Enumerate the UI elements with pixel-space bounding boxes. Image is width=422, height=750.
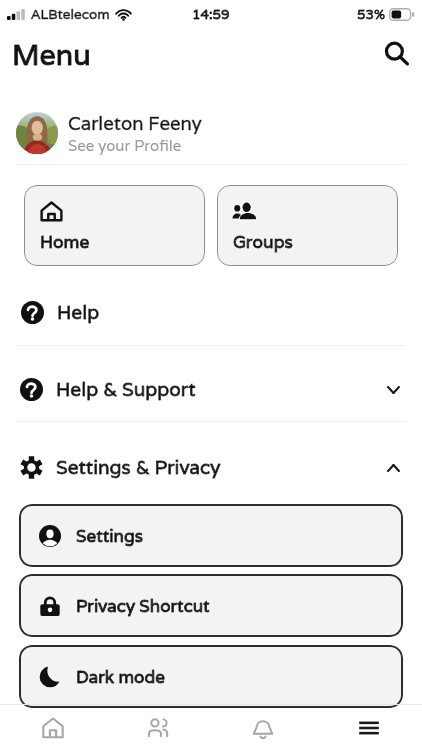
staticText: ALBtelecom	[31, 5, 110, 23]
button[interactable]: Carleton Feeny	[0, 101, 422, 165]
staticText: 53%	[357, 5, 385, 23]
staticText: Settings	[76, 525, 143, 547]
staticText: Help & Support	[56, 377, 196, 402]
button[interactable]: Home	[24, 185, 205, 266]
staticText: Help & Support	[56, 377, 196, 402]
staticText: Home	[40, 230, 90, 252]
staticText: Carleton Feeny	[68, 111, 202, 135]
staticText: ALBtelecom	[31, 5, 110, 23]
staticText: Settings & Privacy	[56, 455, 221, 480]
button[interactable]: Settings & Privacy	[0, 445, 422, 490]
button[interactable]: Settings	[19, 504, 403, 567]
button[interactable]: Home	[0, 705, 105, 750]
staticText: Dark mode	[76, 666, 165, 688]
button[interactable]: Notifications	[210, 705, 316, 750]
staticText: Help	[57, 300, 100, 325]
staticText: Carleton Feeny	[68, 111, 202, 135]
staticText: Groups	[233, 230, 293, 252]
staticText: Home	[40, 230, 90, 252]
staticText: 53%	[357, 5, 385, 23]
staticText: Menu	[12, 36, 91, 73]
staticText: Settings & Privacy	[56, 455, 221, 480]
staticText: 14:59	[192, 5, 230, 23]
staticText: Menu	[12, 36, 91, 73]
button[interactable]: Friends	[105, 705, 210, 750]
button[interactable]: Dark mode	[19, 645, 403, 708]
staticText: Privacy Shortcut	[76, 595, 210, 617]
button[interactable]: Menu	[316, 705, 422, 750]
staticText: See your Profile	[68, 136, 182, 155]
button[interactable]: Privacy Shortcut	[19, 574, 403, 637]
staticText: Dark mode	[76, 666, 165, 688]
button[interactable]: Search	[381, 38, 413, 70]
staticText: 14:59	[192, 5, 230, 23]
staticText: Help	[57, 300, 100, 325]
staticText: Privacy Shortcut	[76, 595, 210, 617]
staticText: Settings	[76, 525, 143, 547]
staticText: Groups	[233, 230, 293, 252]
button[interactable]: Help & Support	[0, 367, 422, 412]
button[interactable]: Groups	[217, 185, 398, 266]
button[interactable]: Help	[0, 290, 422, 335]
